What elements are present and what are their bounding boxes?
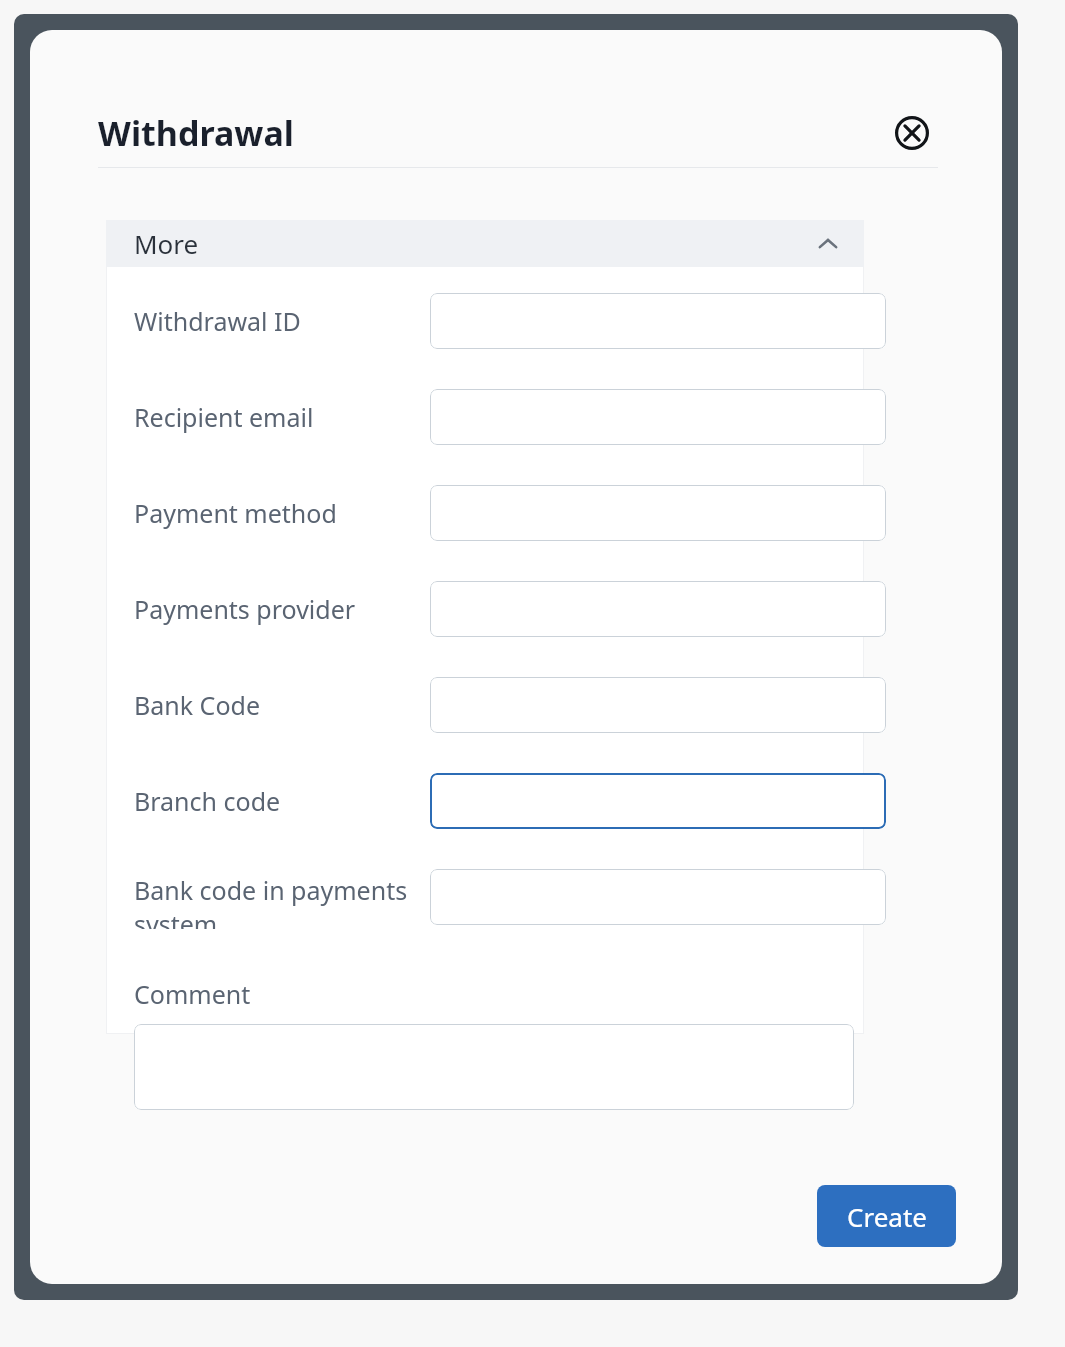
- staticText: Payment method: [134, 496, 337, 530]
- staticText: Withdrawal: [98, 110, 294, 156]
- staticText: Branch code: [134, 784, 281, 818]
- button[interactable]: [430, 581, 886, 637]
- button[interactable]: [430, 677, 886, 733]
- button[interactable]: More: [106, 220, 864, 267]
- staticText: Withdrawal ID: [134, 304, 301, 338]
- button[interactable]: [430, 869, 886, 925]
- button[interactable]: Create: [817, 1185, 956, 1247]
- button[interactable]: Close: [886, 107, 938, 159]
- button[interactable]: [430, 773, 886, 829]
- staticText: Recipient email: [134, 400, 314, 434]
- button[interactable]: [430, 293, 886, 349]
- staticText: Create: [847, 1199, 927, 1234]
- staticText: Bank code in payments system: [134, 873, 424, 929]
- staticText: Payments provider: [134, 592, 356, 626]
- button[interactable]: [430, 389, 886, 445]
- button[interactable]: [430, 485, 886, 541]
- staticText: Bank Code: [134, 688, 260, 722]
- staticText: More: [134, 226, 199, 261]
- staticText: Comment: [134, 977, 251, 1011]
- button[interactable]: [134, 1024, 854, 1110]
